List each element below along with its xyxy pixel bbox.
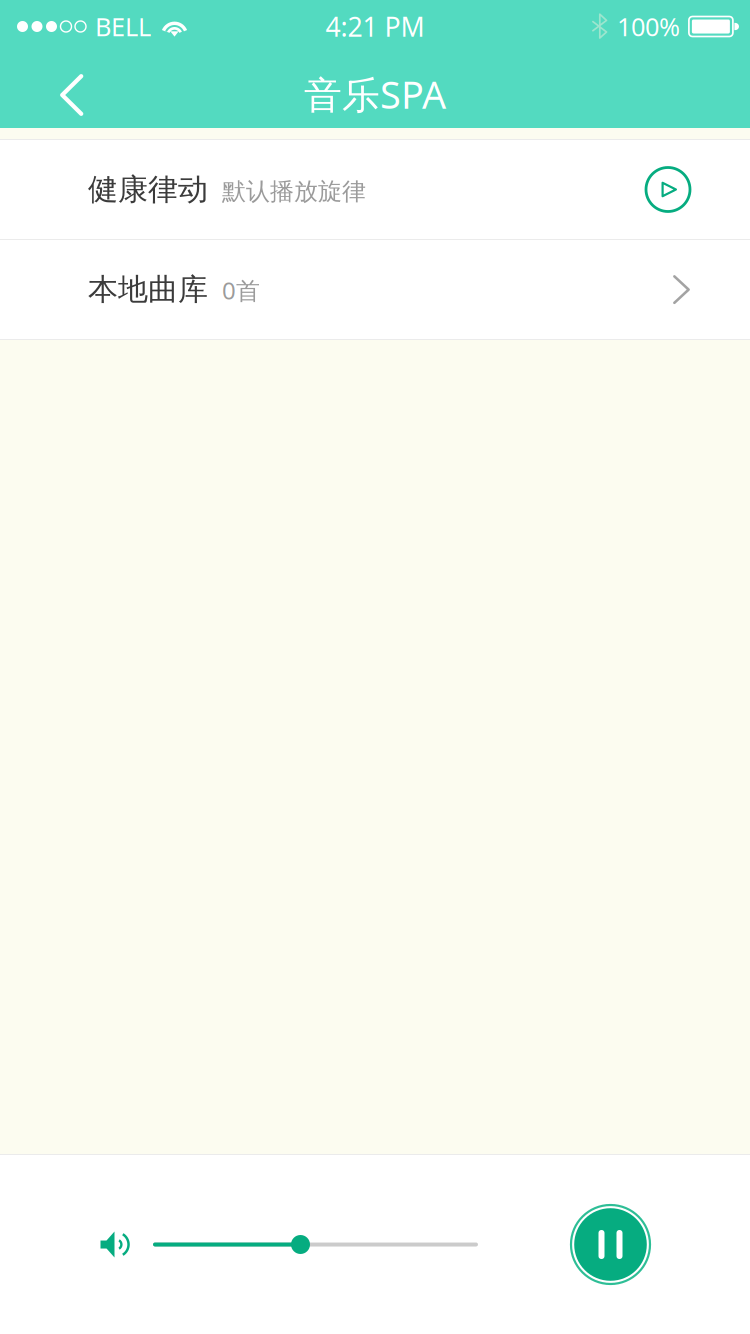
button[interactable]: Volume [94, 1225, 137, 1264]
staticText: BELL [95, 10, 151, 43]
button[interactable]: 本地曲库 [0, 240, 750, 339]
button[interactable]: 健康律动 [0, 140, 750, 239]
staticText: 音乐SPA [304, 68, 446, 120]
staticText: 默认播放旋律 [222, 176, 366, 207]
button[interactable]: Back [29, 44, 111, 128]
staticText: 本地曲库 [88, 271, 208, 308]
staticText: 健康律动 [88, 171, 208, 208]
button[interactable]: Pause [571, 1205, 650, 1284]
staticText: 0首 [222, 274, 260, 306]
staticText: 100% [617, 10, 680, 43]
staticText: 4:21 PM [325, 9, 424, 44]
